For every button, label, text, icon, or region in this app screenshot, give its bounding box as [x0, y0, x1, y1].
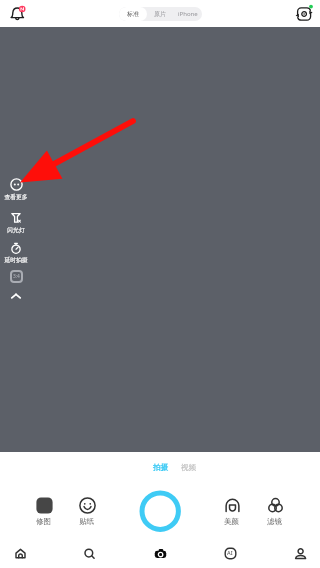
button[interactable]: AI Assistant: [214, 538, 246, 568]
button[interactable]: Shutter: [139, 490, 182, 533]
button[interactable]: Profile: [284, 538, 316, 568]
staticText: iPhone: [178, 10, 198, 18]
button[interactable]: 滤镜: [261, 497, 289, 527]
staticText: AI: [227, 549, 233, 557]
staticText: 拍摄: [153, 463, 168, 472]
button[interactable]: Switch camera: [292, 3, 314, 25]
staticText: 修图: [36, 517, 52, 527]
button[interactable]: 原片: [147, 7, 173, 21]
staticText: 标准: [127, 10, 139, 18]
button[interactable]: 修图: [30, 497, 58, 527]
button[interactable]: Home: [4, 538, 36, 568]
button[interactable]: Notifications: [8, 4, 28, 24]
button[interactable]: 标准: [119, 7, 147, 21]
button[interactable]: Search: [73, 538, 105, 568]
button[interactable]: 查看更多: [1, 178, 31, 200]
staticText: 3:4: [13, 273, 20, 280]
button[interactable]: iPhone: [173, 7, 202, 21]
button[interactable]: 拍摄: [150, 461, 171, 473]
staticText: 查看更多: [4, 193, 28, 200]
button[interactable]: 闪光灯: [1, 212, 31, 233]
button[interactable]: Camera: [144, 538, 176, 568]
button[interactable]: Aspect ratio 3:4: [2, 268, 30, 284]
button[interactable]: Collapse: [2, 290, 30, 302]
button[interactable]: 延时拍摄: [1, 242, 31, 263]
staticText: 美颜: [224, 517, 240, 527]
staticText: 贴纸: [79, 517, 95, 527]
button[interactable]: 贴纸: [73, 497, 101, 527]
staticText: 原片: [154, 10, 166, 18]
button[interactable]: 视频: [178, 461, 198, 473]
button[interactable]: 美颜: [218, 497, 246, 527]
staticText: 滤镜: [267, 517, 283, 527]
staticText: 闪光灯: [7, 226, 25, 233]
staticText: 延时拍摄: [4, 256, 28, 263]
staticText: 视频: [181, 463, 196, 472]
